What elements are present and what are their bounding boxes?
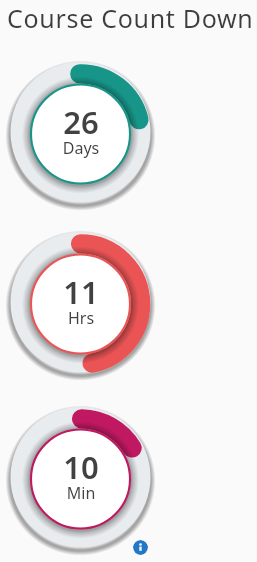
button[interactable]: 11 (0, 0, 257, 562)
button[interactable]: 26 (0, 0, 257, 562)
staticText: Days (1, 137, 161, 159)
staticText: Min (1, 482, 161, 504)
staticText: Course Count Down (7, 1, 254, 35)
staticText: 11 (1, 271, 161, 313)
button[interactable]: 10 (0, 0, 257, 562)
staticText: Hrs (1, 307, 161, 329)
staticText: 26 (1, 101, 161, 143)
staticText: 10 (1, 446, 161, 488)
button[interactable]: Information (133, 540, 148, 555)
